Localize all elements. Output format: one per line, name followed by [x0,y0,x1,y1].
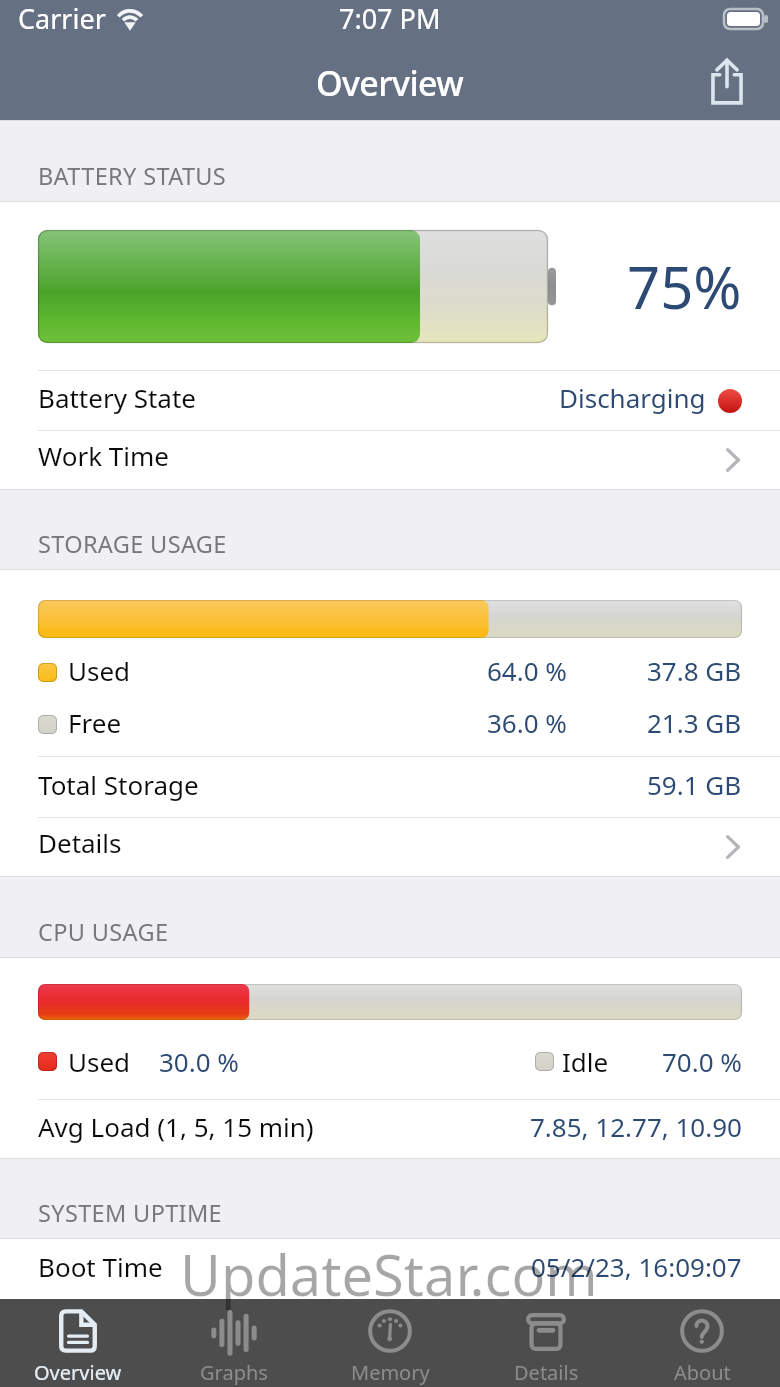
staticText: Used [68,1044,131,1079]
staticText: Details [514,1359,579,1386]
button[interactable]: Memory [312,1299,468,1387]
staticText: Memory [351,1359,430,1386]
staticText: Overview [34,1359,122,1386]
staticText: CPU USAGE [38,916,169,948]
staticText: UpdateStar.com [180,1236,598,1312]
staticText: 75% [627,247,742,326]
staticText: 30.0 % [159,1044,239,1079]
button[interactable]: Battery State [0,371,780,430]
staticText: STORAGE USAGE [38,528,227,560]
staticText: 05/2/23, 16:09:07 [531,1249,742,1284]
staticText: Graphs [200,1359,268,1386]
staticText: 59.1 GB [647,767,742,802]
staticText: Overview [316,60,464,106]
staticText: Battery State [38,380,196,415]
button[interactable]: Graphs [156,1299,312,1387]
button[interactable]: Overview [0,1299,156,1387]
button[interactable]: Total Storage [0,757,780,817]
staticText: Boot Time [38,1249,163,1284]
button[interactable]: Share [699,53,755,109]
button[interactable]: Details [468,1299,624,1387]
button[interactable]: Avg Load (1, 5, 15 min) [0,1100,780,1158]
staticText: BATTERY STATUS [38,160,227,192]
staticText: 7.85, 12.77, 10.90 [530,1109,742,1144]
staticText: 7:07 PM [339,0,441,37]
staticText: 64.0 % [487,653,567,688]
staticText: 37.8 GB [647,653,742,688]
staticText: Total Storage [38,767,199,802]
staticText: Free [68,705,122,740]
button[interactable]: Boot Time [0,1239,780,1299]
staticText: Avg Load (1, 5, 15 min) [38,1109,314,1144]
staticText: Discharging [559,380,706,415]
staticText: Idle [562,1044,609,1079]
button[interactable]: Details [0,818,780,876]
staticText: SYSTEM UPTIME [38,1197,223,1229]
button[interactable]: Work Time [0,431,780,489]
staticText: 36.0 % [487,705,567,740]
button[interactable]: About [624,1299,780,1387]
staticText: Used [68,653,131,688]
staticText: 70.0 % [662,1044,742,1079]
staticText: About [674,1359,731,1386]
staticText: Carrier [18,0,106,37]
staticText: Work Time [38,438,169,473]
staticText: Details [38,825,122,860]
staticText: 21.3 GB [647,705,742,740]
